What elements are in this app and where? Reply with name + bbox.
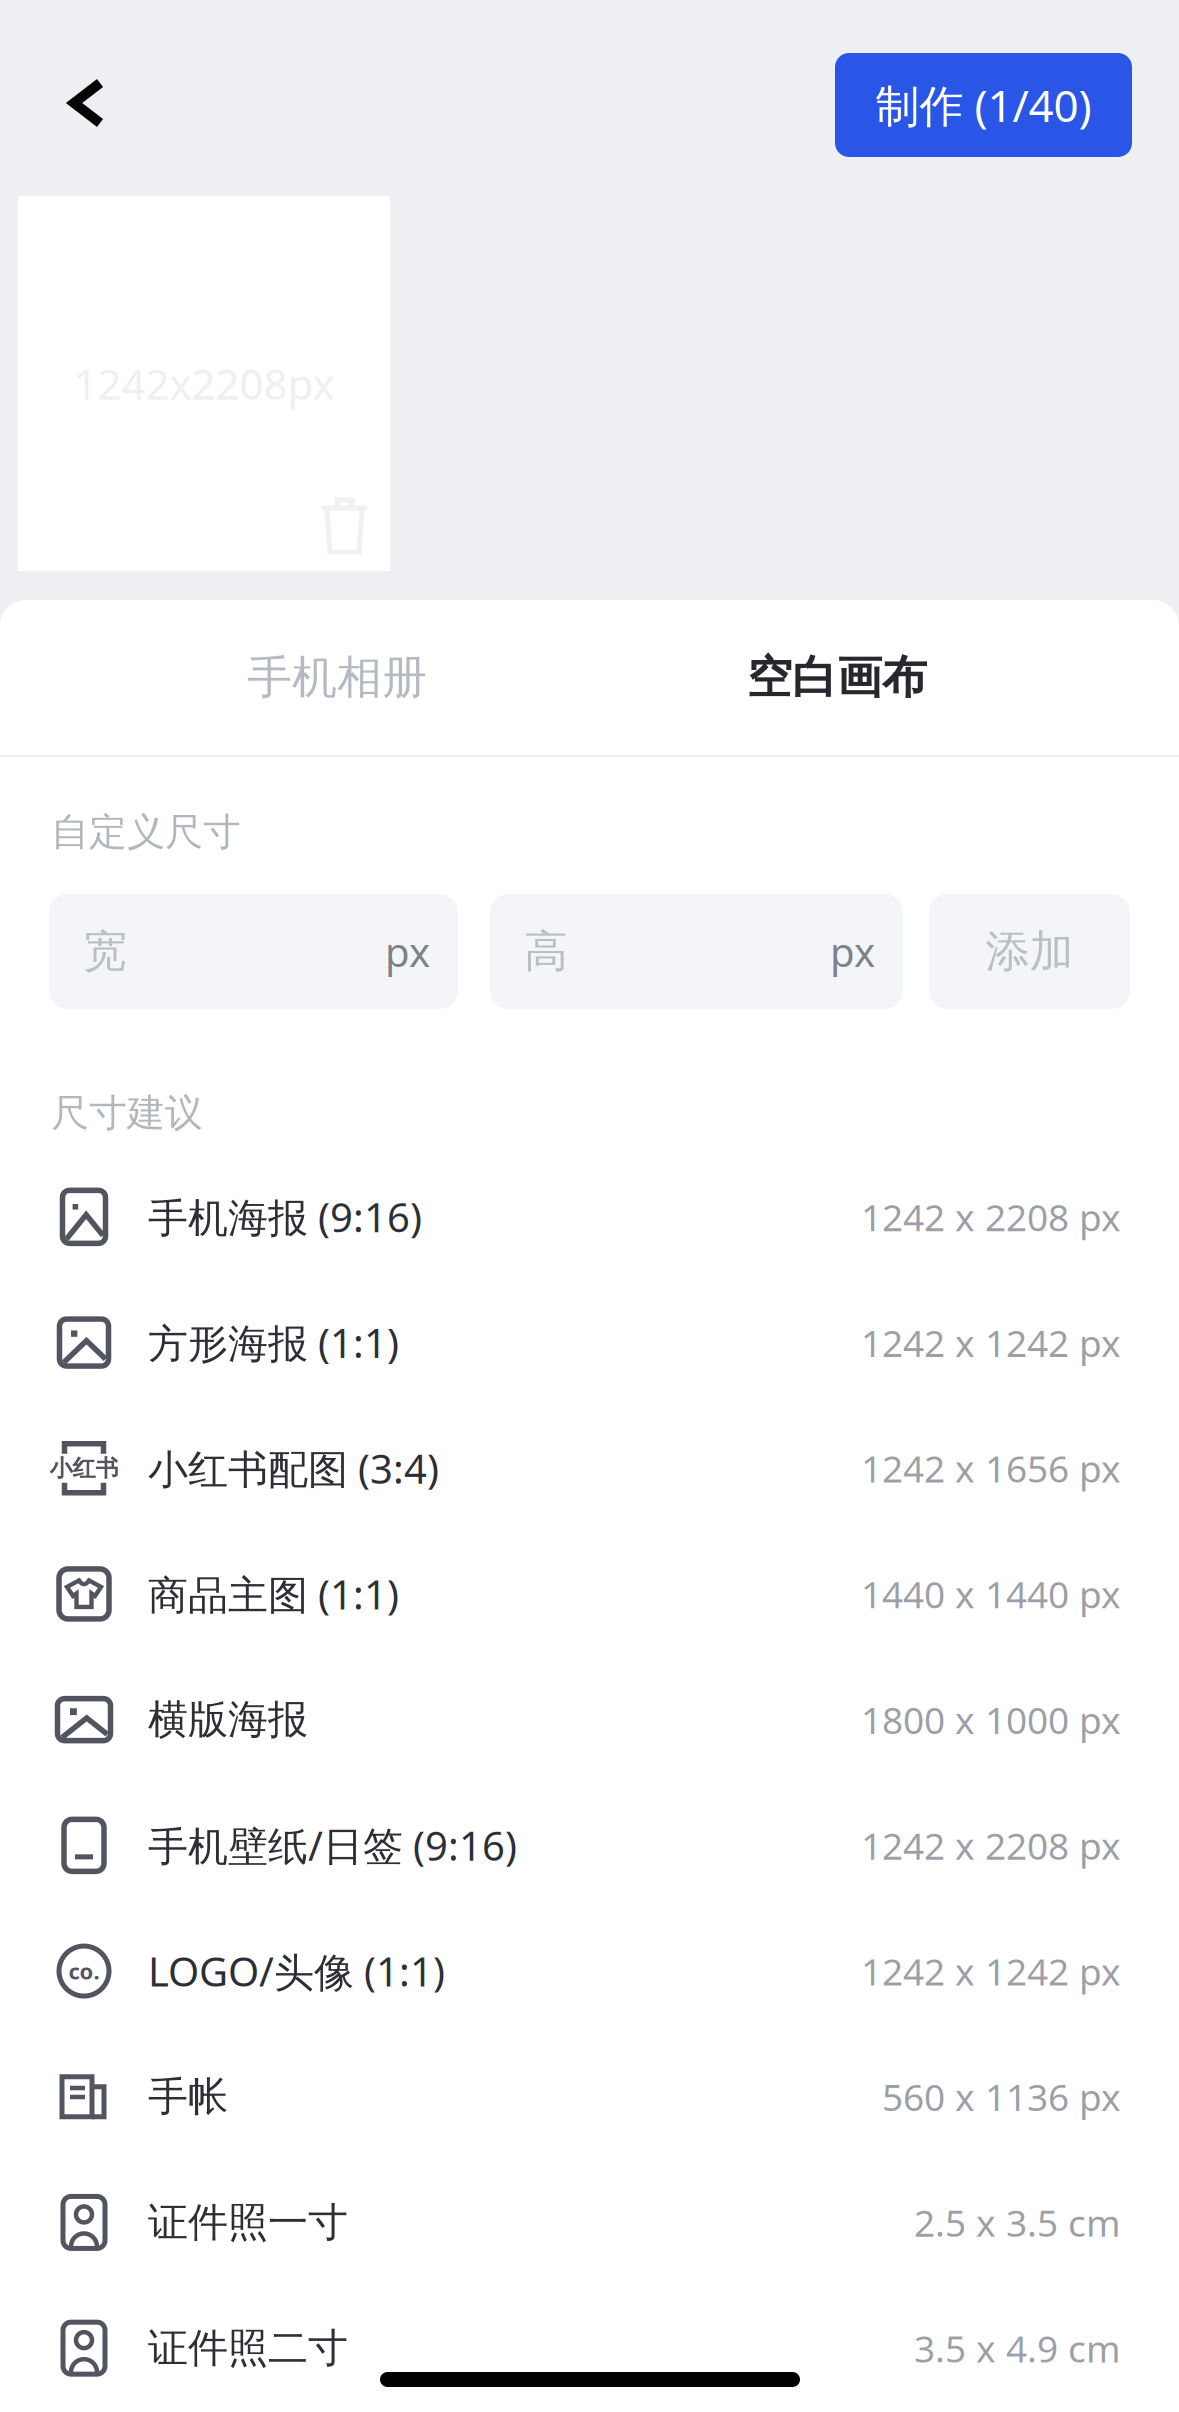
staticText: 手帐 <box>148 2072 228 2122</box>
staticText: px <box>830 924 875 979</box>
button[interactable]: 方形海报 (1:1) <box>0 1280 1179 1405</box>
button[interactable]: 商品主图 (1:1) <box>0 1531 1179 1657</box>
staticText: co. <box>68 1956 99 1986</box>
staticText: 1242 x 1242 px <box>861 1946 1121 1996</box>
staticText: 方形海报 (1:1) <box>148 1315 399 1370</box>
button[interactable]: 制作 (1/40) <box>835 53 1132 157</box>
staticText: 小红书配图 (3:4) <box>148 1441 439 1495</box>
staticText: 证件照一寸 <box>148 2197 348 2248</box>
staticText: 自定义尺寸 <box>51 808 241 856</box>
staticText: 560 x 1136 px <box>882 2072 1121 2122</box>
staticText: 1800 x 1000 px <box>861 1694 1121 1745</box>
staticText: 1242 x 2208 px <box>861 1192 1121 1242</box>
button[interactable]: 空白画布 <box>692 600 982 755</box>
staticText: 证件照二寸 <box>148 2323 348 2373</box>
staticText: 横版海报 <box>148 1694 308 1745</box>
button[interactable]: 证件照一寸 <box>0 2160 1179 2285</box>
staticText: 3.5 x 4.9 cm <box>914 2323 1121 2373</box>
staticText: 1242 x 1656 px <box>861 1443 1121 1493</box>
button[interactable]: 证件照二寸 <box>0 2285 1179 2411</box>
staticText: 手机相册 <box>247 649 427 706</box>
staticText: 空白画布 <box>747 649 927 706</box>
staticText: 1242 x 2208 px <box>861 1820 1121 1871</box>
staticText: 尺寸建议 <box>51 1089 203 1137</box>
staticText: 宽 <box>83 924 127 979</box>
staticText: 2.5 x 3.5 cm <box>914 2197 1121 2248</box>
button[interactable]: 手机相册 <box>192 600 482 755</box>
button[interactable]: 宽 <box>49 894 458 1009</box>
button[interactable]: 横版海报 <box>0 1657 1179 1782</box>
button[interactable]: Delete <box>319 493 390 571</box>
staticText: 手机海报 (9:16) <box>148 1190 422 1244</box>
staticText: 1440 x 1440 px <box>861 1569 1121 1619</box>
staticText: 1242x2208px <box>73 355 334 412</box>
staticText: 手机壁纸/日签 (9:16) <box>148 1818 517 1873</box>
staticText: px <box>385 924 430 979</box>
button[interactable]: 小红书 <box>0 1405 1179 1531</box>
staticText: 1242 x 1242 px <box>861 1317 1121 1368</box>
button[interactable]: 添加 <box>929 894 1130 1009</box>
staticText: 制作 (1/40) <box>875 75 1091 135</box>
staticText: 添加 <box>985 924 1073 979</box>
staticText: 小红书 <box>49 1454 118 1483</box>
button[interactable]: 手帐 <box>0 2034 1179 2160</box>
button[interactable]: Back <box>31 47 143 159</box>
button[interactable]: co. <box>0 1908 1179 2034</box>
staticText: 高 <box>524 924 568 979</box>
button[interactable]: 手机壁纸/日签 (9:16) <box>0 1782 1179 1908</box>
staticText: 商品主图 (1:1) <box>148 1567 399 1621</box>
button[interactable]: 手机海报 (9:16) <box>0 1154 1179 1280</box>
staticText: LOGO/头像 (1:1) <box>148 1944 445 1998</box>
button[interactable]: 高 <box>490 894 903 1009</box>
